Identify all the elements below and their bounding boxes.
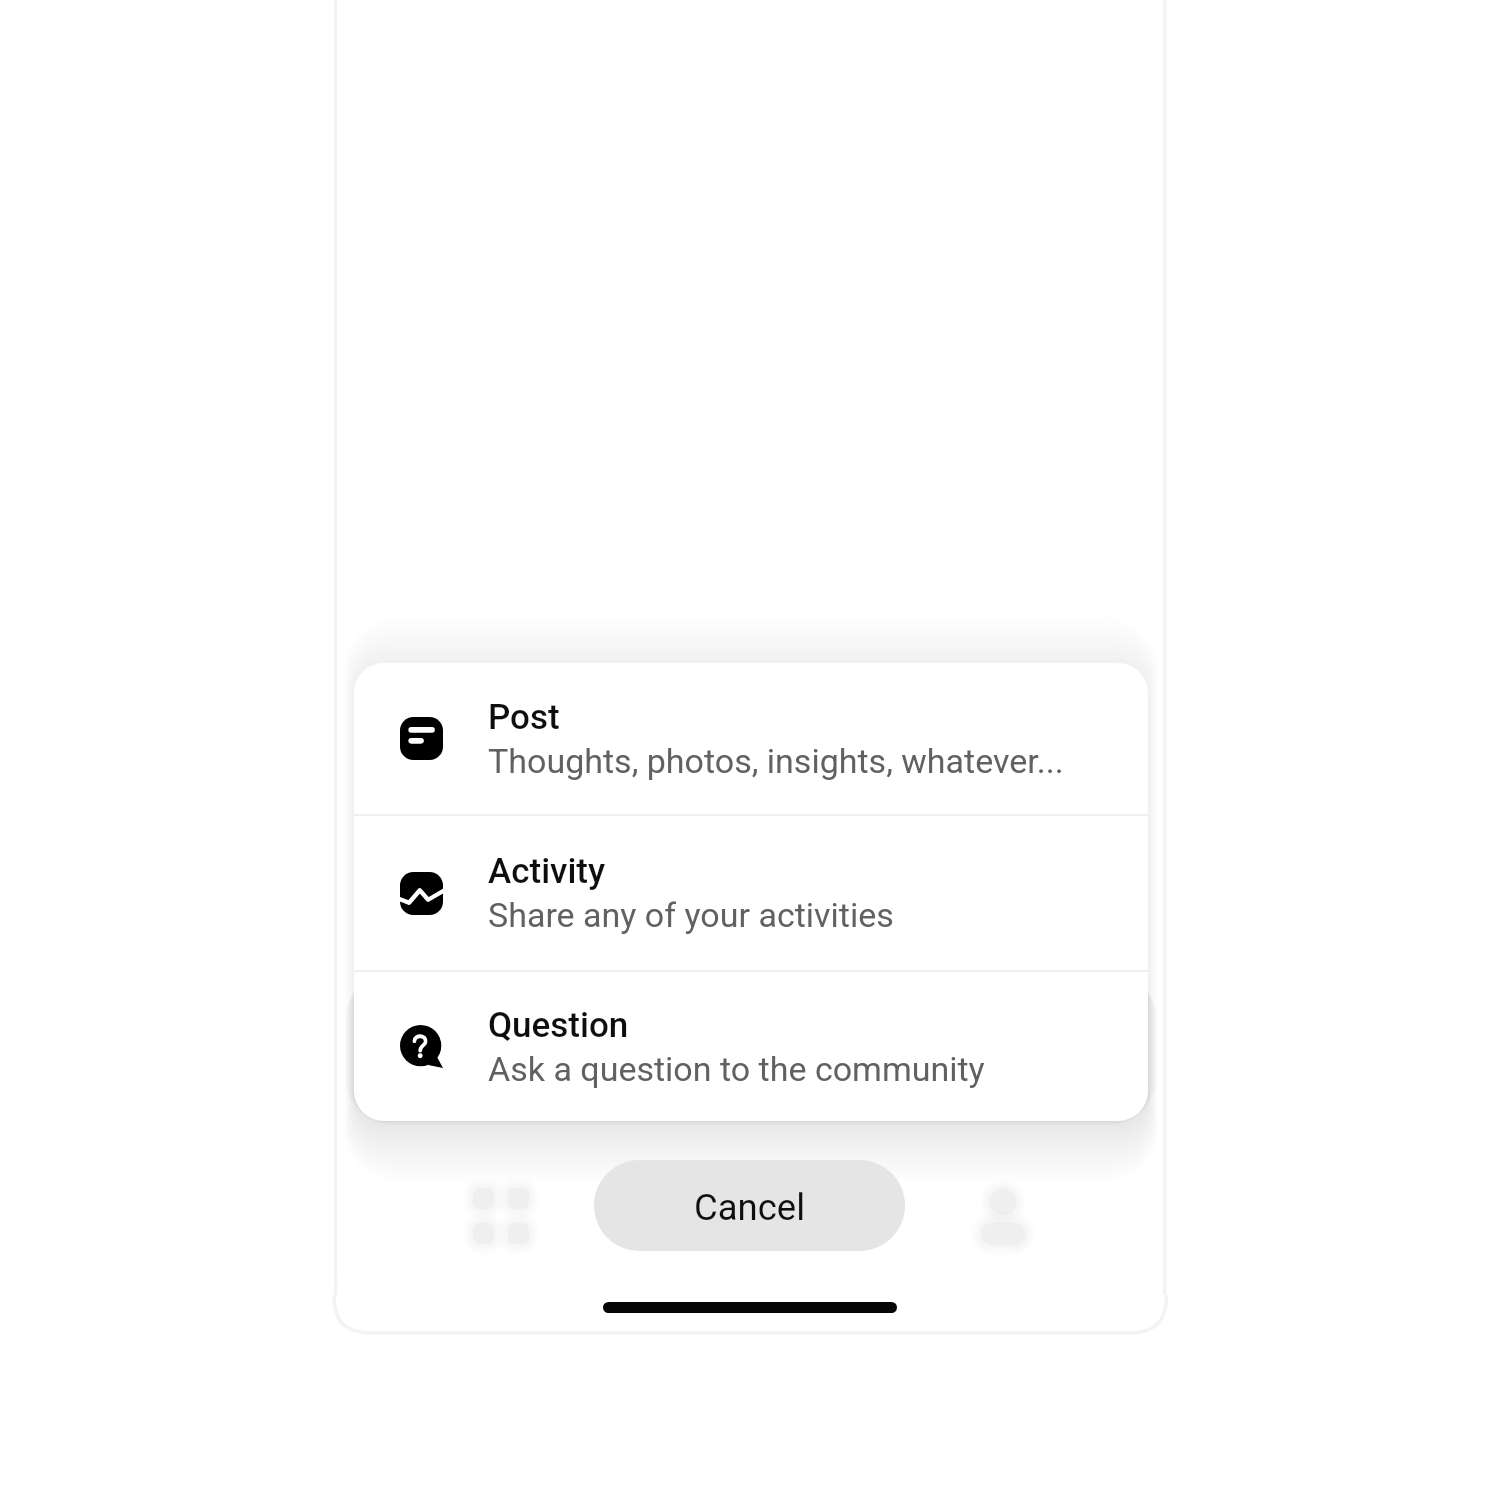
staticText: Question <box>488 1005 629 1046</box>
staticText: Ask a question to the community <box>488 1049 985 1089</box>
staticText: Cancel <box>694 1186 806 1229</box>
button[interactable]: Post <box>354 663 1148 814</box>
staticText: Share any of your activities <box>488 895 894 935</box>
other: Question <box>400 1025 443 1068</box>
button[interactable]: Cancel <box>594 1160 905 1251</box>
staticText: Thoughts, photos, insights, whatever... <box>488 741 1064 781</box>
button[interactable]: Activity <box>354 816 1148 970</box>
other: Post <box>400 717 443 760</box>
other: Activity <box>400 872 443 915</box>
button[interactable]: Question <box>354 972 1148 1121</box>
staticText: Post <box>488 697 560 738</box>
staticText: Activity <box>488 851 606 892</box>
